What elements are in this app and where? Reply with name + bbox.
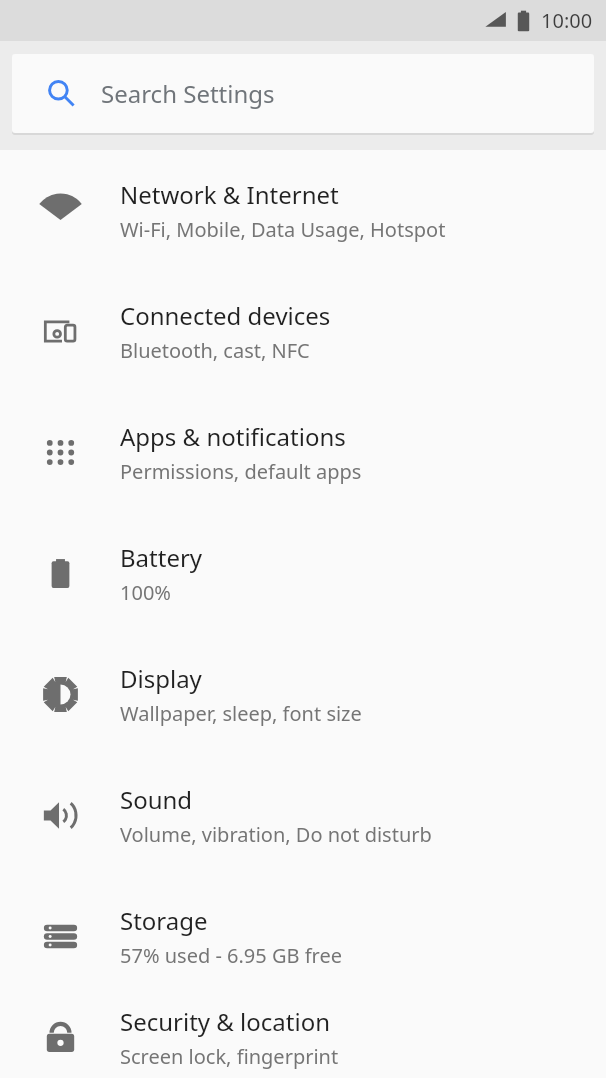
- staticText: Security & location: [120, 1005, 331, 1038]
- staticText: Permissions, default apps: [120, 458, 362, 485]
- staticText: Wallpaper, sleep, font size: [120, 700, 362, 727]
- staticText: 10:00: [541, 7, 593, 34]
- staticText: Network & Internet: [120, 178, 339, 211]
- staticText: Apps & notifications: [120, 420, 346, 453]
- button[interactable]: Connected devices: [0, 271, 606, 392]
- button[interactable]: Apps & notifications: [0, 392, 606, 513]
- staticText: Battery: [120, 541, 203, 574]
- staticText: Connected devices: [120, 299, 331, 332]
- staticText: Storage: [120, 904, 208, 937]
- staticText: Screen lock, fingerprint: [120, 1043, 339, 1070]
- staticText: 100%: [120, 579, 171, 606]
- other: Battery full: [517, 9, 530, 33]
- button[interactable]: Network & Internet: [0, 150, 606, 271]
- staticText: Volume, vibration, Do not disturb: [120, 821, 432, 848]
- button[interactable]: Search Settings: [12, 54, 594, 133]
- staticText: 57% used - 6.95 GB free: [120, 942, 342, 969]
- button[interactable]: Sound: [0, 755, 606, 876]
- button[interactable]: Security & location: [0, 997, 606, 1078]
- button[interactable]: Storage: [0, 876, 606, 997]
- staticText: Wi-Fi, Mobile, Data Usage, Hotspot: [120, 216, 446, 243]
- other: Mobile signal: [484, 10, 507, 31]
- button[interactable]: Display: [0, 634, 606, 755]
- staticText: Search Settings: [101, 77, 275, 110]
- button[interactable]: Battery: [0, 513, 606, 634]
- staticText: Bluetooth, cast, NFC: [120, 337, 310, 364]
- staticText: Sound: [120, 783, 193, 816]
- staticText: Display: [120, 662, 202, 695]
